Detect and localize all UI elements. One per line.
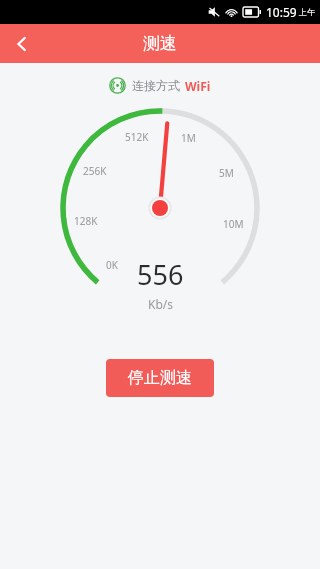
staticText: 512K [125,130,149,144]
staticText: 上午 [299,7,315,17]
staticText: 5M [219,166,234,180]
staticText: 连接方式 [132,78,180,93]
staticText: 1M [181,131,196,145]
staticText: 0K [106,258,118,272]
staticText: 10M [223,217,244,231]
staticText: 128K [74,214,98,228]
staticText: 测速 [143,33,177,54]
staticText: 556 [137,256,184,293]
staticText: 停止测速 [128,368,192,388]
staticText: 10:59 [266,4,297,20]
staticText: 256K [83,164,107,178]
button[interactable]: Back [0,24,44,63]
button[interactable]: 停止测速 [106,359,214,397]
staticText: Kb/s [148,296,174,312]
staticText: WiFi [185,78,211,94]
